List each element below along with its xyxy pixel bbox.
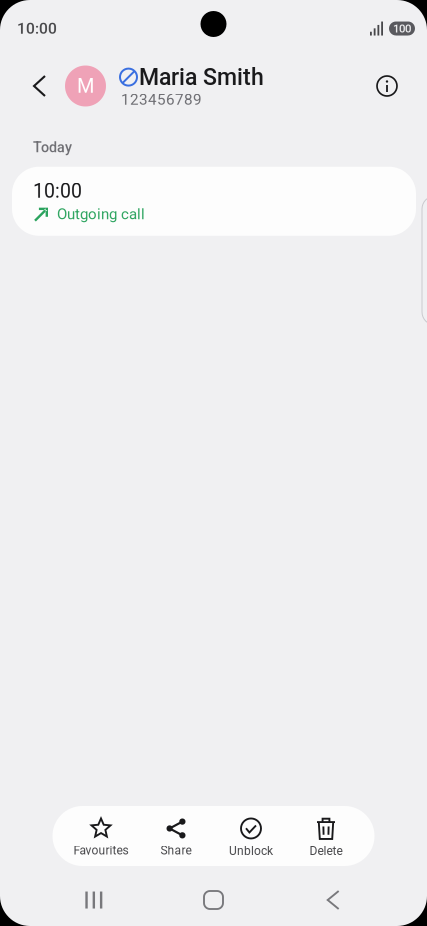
staticText: Delete xyxy=(309,844,342,858)
button[interactable]: Details xyxy=(359,57,427,115)
button[interactable]: Back xyxy=(0,57,65,115)
staticText: Outgoing call xyxy=(57,205,145,223)
button[interactable]: Back xyxy=(273,878,393,922)
button[interactable]: Delete xyxy=(288,814,363,858)
button[interactable]: 10:00 xyxy=(12,167,416,236)
staticText: 100 xyxy=(393,22,411,35)
staticText: Maria Smith xyxy=(139,64,264,91)
button[interactable]: Recents xyxy=(34,878,154,922)
button[interactable]: Share xyxy=(138,814,213,858)
button[interactable]: Favourites xyxy=(63,814,138,858)
staticText: Share xyxy=(160,843,191,858)
staticText: 10:00 xyxy=(17,19,57,38)
button[interactable]: Unblock xyxy=(213,814,288,858)
staticText: Favourites xyxy=(73,843,128,858)
staticText: 10:00 xyxy=(33,179,82,202)
staticText: Today xyxy=(33,139,72,156)
staticText: Unblock xyxy=(229,844,273,858)
staticText: M xyxy=(77,74,94,98)
staticText: 123456789 xyxy=(121,91,202,108)
button[interactable]: Home xyxy=(154,878,273,922)
